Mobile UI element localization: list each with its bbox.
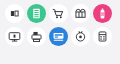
button[interactable]: Medal — [71, 27, 90, 46]
button[interactable]: Monitor — [5, 27, 24, 46]
button[interactable]: Factory — [71, 4, 90, 23]
button[interactable]: Shopping cart — [49, 4, 68, 23]
button[interactable]: Calendar — [93, 27, 112, 46]
button[interactable]: Printer — [27, 27, 46, 46]
button[interactable]: Video — [49, 27, 68, 46]
button[interactable]: Article — [27, 4, 46, 23]
button[interactable]: Bottle — [93, 4, 112, 23]
button[interactable]: Book — [5, 4, 24, 23]
